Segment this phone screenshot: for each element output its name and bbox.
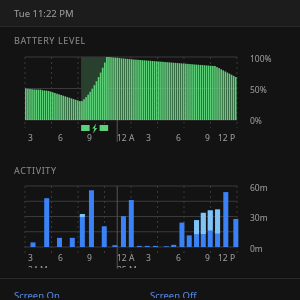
staticText: 3: [28, 252, 33, 264]
staticText: 0m: [250, 243, 263, 255]
staticText: Tue 11:22 PM: [14, 7, 74, 20]
staticText: 3: [28, 132, 33, 144]
staticText: 12 P: [218, 132, 236, 144]
button[interactable]: Tue 11:22 PM: [0, 0, 300, 26]
staticText: 30m: [250, 212, 268, 224]
staticText: 3: [146, 132, 151, 144]
staticText: Screen Off: [150, 289, 197, 298]
staticText: 9: [205, 252, 210, 264]
staticText: 0%: [250, 115, 262, 127]
staticText: 12 A: [117, 132, 135, 144]
staticText: 60m: [250, 182, 268, 194]
button[interactable]: 60m: [0, 182, 300, 268]
staticText: 9: [87, 132, 92, 144]
staticText: ACTIVITY: [14, 164, 57, 176]
staticText: 12 A: [117, 252, 135, 264]
staticText: 6: [58, 132, 63, 144]
staticText: 9: [87, 252, 92, 264]
staticText: 6: [176, 252, 181, 264]
staticText: 24 May: [28, 264, 57, 268]
staticText: 6: [58, 252, 63, 264]
staticText: 50%: [250, 84, 267, 96]
staticText: 3: [146, 252, 151, 264]
staticText: 12 P: [218, 252, 236, 264]
button[interactable]: 100%: [0, 52, 300, 150]
staticText: 6: [176, 132, 181, 144]
button[interactable]: Screen On: [14, 287, 150, 300]
staticText: BATTERY LEVEL: [14, 34, 86, 46]
staticText: 9: [205, 132, 210, 144]
staticText: 25 May: [117, 264, 146, 268]
staticText: 100%: [250, 53, 272, 65]
button[interactable]: Screen Off: [150, 287, 300, 300]
staticText: Screen On: [14, 289, 60, 298]
